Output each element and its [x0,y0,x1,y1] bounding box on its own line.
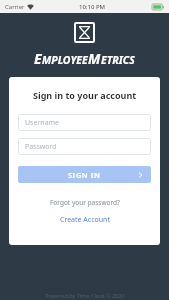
staticText: ETRICS [101,53,135,67]
staticText: M [88,49,101,68]
staticText: Password [25,142,57,152]
staticText: SIGN IN [68,170,101,180]
staticText: 10:10 PM [79,3,106,11]
staticText: Username [25,118,60,128]
button[interactable]: Username [18,114,151,131]
staticText: E [34,49,42,68]
staticText: Powered by Time Clock © 2020 [45,292,125,299]
staticText: MPLOYEE [42,53,88,67]
button[interactable]: Password [18,138,151,155]
button[interactable]: Forgot your password? [46,196,124,209]
staticText: Carrier [5,3,25,11]
button[interactable]: SIGN IN [18,166,151,183]
staticText: Sign in to your account [33,89,137,101]
button[interactable]: Create Account [56,213,114,227]
